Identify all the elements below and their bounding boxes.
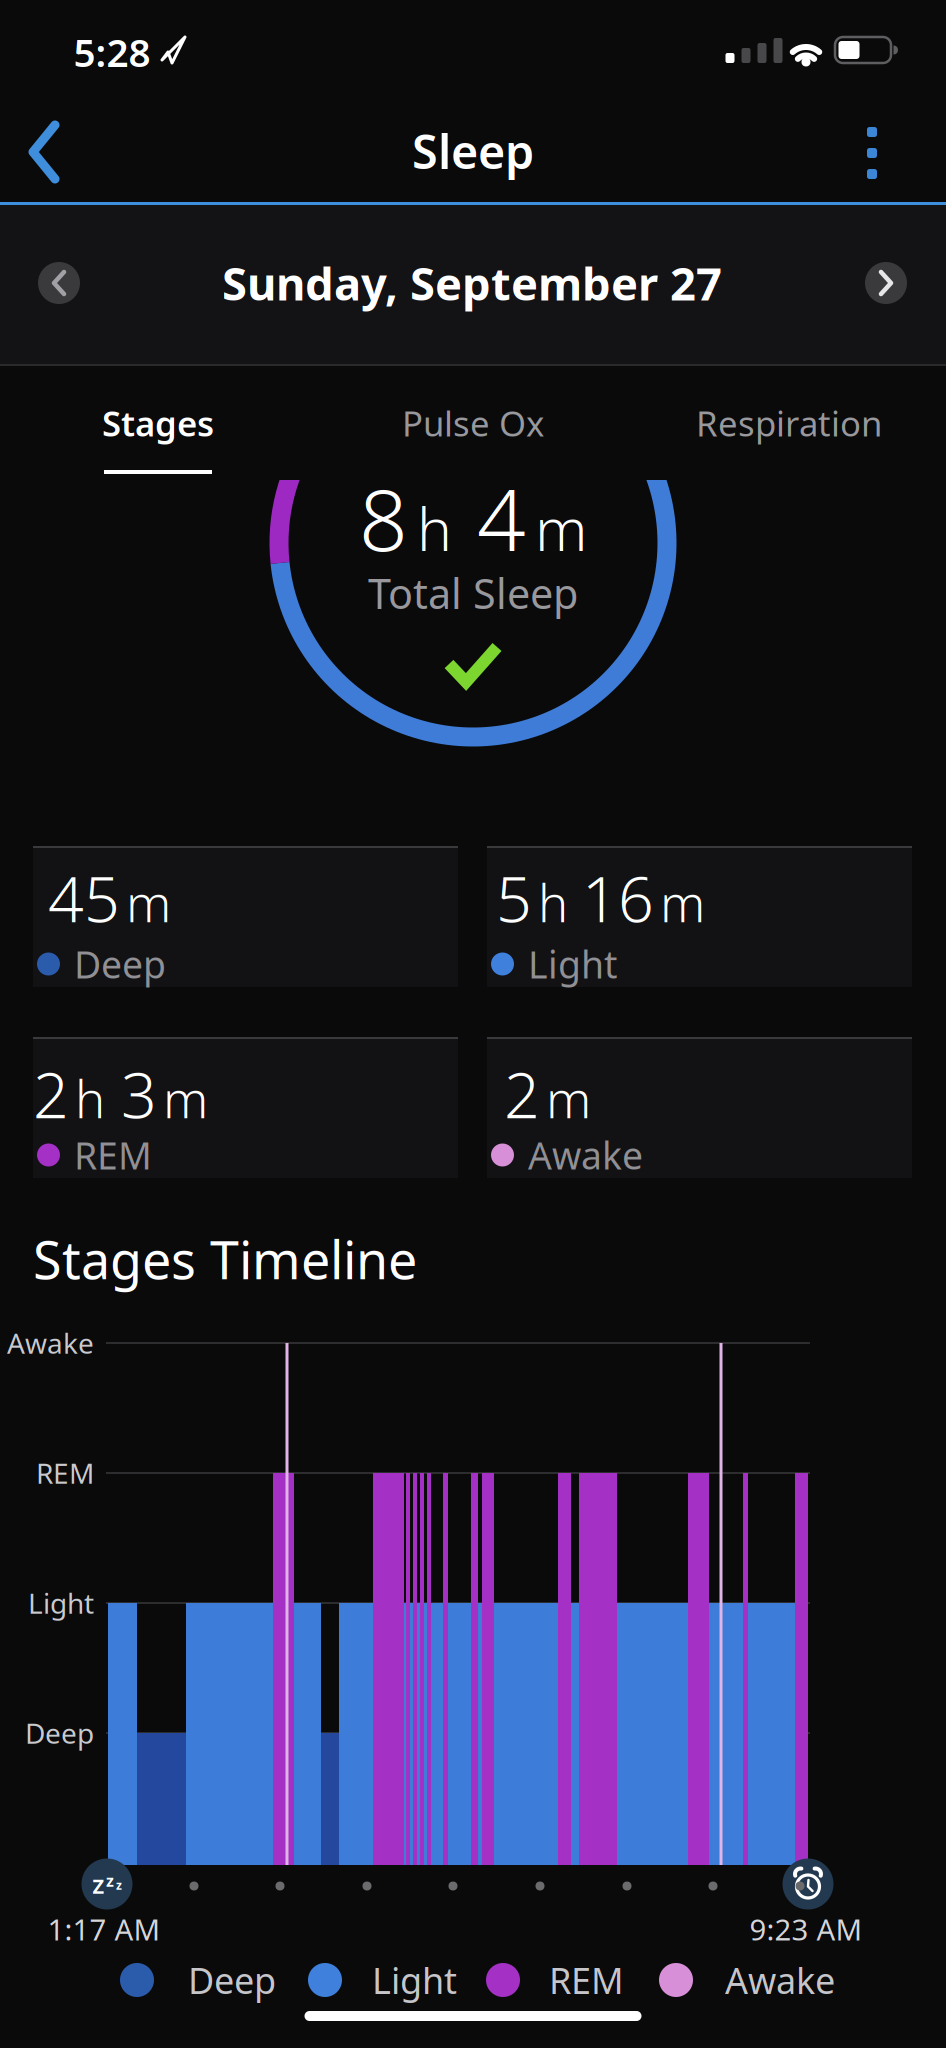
staticText: m (660, 869, 705, 936)
staticText: 2 (33, 1052, 69, 1136)
staticText: 5 (496, 856, 532, 940)
staticText: h (417, 489, 452, 567)
staticText: z (106, 1870, 114, 1891)
staticText: REM (74, 1130, 152, 1180)
staticText: m (535, 489, 587, 567)
staticText: Awake (528, 1130, 643, 1180)
staticText: Deep (74, 939, 166, 989)
button[interactable]: Z (81, 1858, 132, 1909)
staticText: m (163, 1065, 208, 1132)
staticText: REM (36, 1454, 94, 1492)
staticText: h (538, 869, 568, 936)
button[interactable] (21, 107, 91, 197)
staticText: 4 (477, 461, 526, 575)
staticText: Sleep (412, 120, 534, 182)
staticText: Deep (188, 1956, 276, 2004)
staticText: REM (549, 1956, 624, 2004)
staticText: Total Sleep (368, 566, 578, 620)
staticText: Light (528, 939, 617, 989)
staticText: h (75, 1065, 105, 1132)
button[interactable]: Pulse Ox (315, 367, 630, 479)
button[interactable] (851, 248, 921, 318)
staticText: Stages Timeline (33, 1224, 417, 1294)
staticText: 3 (121, 1052, 157, 1136)
staticText: 45 (48, 856, 120, 940)
staticText: 5:28 (73, 26, 150, 78)
button[interactable]: Respiration (631, 367, 946, 479)
staticText: 1:17 AM (47, 1909, 160, 1948)
staticText: 8 (359, 461, 408, 575)
staticText: Awake (7, 1324, 94, 1362)
staticText: Sunday, September 27 (222, 253, 722, 313)
staticText: Z (92, 1873, 104, 1899)
staticText: Deep (25, 1714, 94, 1752)
staticText: Stages (102, 400, 214, 446)
button[interactable]: Stages (0, 367, 315, 479)
staticText: z (116, 1877, 122, 1893)
staticText: Light (28, 1584, 94, 1622)
staticText: m (546, 1065, 591, 1132)
staticText: 9:23 AM (749, 1909, 862, 1948)
button[interactable] (842, 112, 902, 192)
staticText: Pulse Ox (402, 400, 544, 446)
staticText: 2 (504, 1052, 540, 1136)
button[interactable] (782, 1858, 833, 1909)
staticText: Awake (725, 1956, 835, 2004)
staticText: 16 (582, 856, 654, 940)
button[interactable] (24, 248, 94, 318)
staticText: m (126, 869, 171, 936)
staticText: Light (372, 1956, 457, 2004)
staticText: Respiration (696, 400, 882, 446)
